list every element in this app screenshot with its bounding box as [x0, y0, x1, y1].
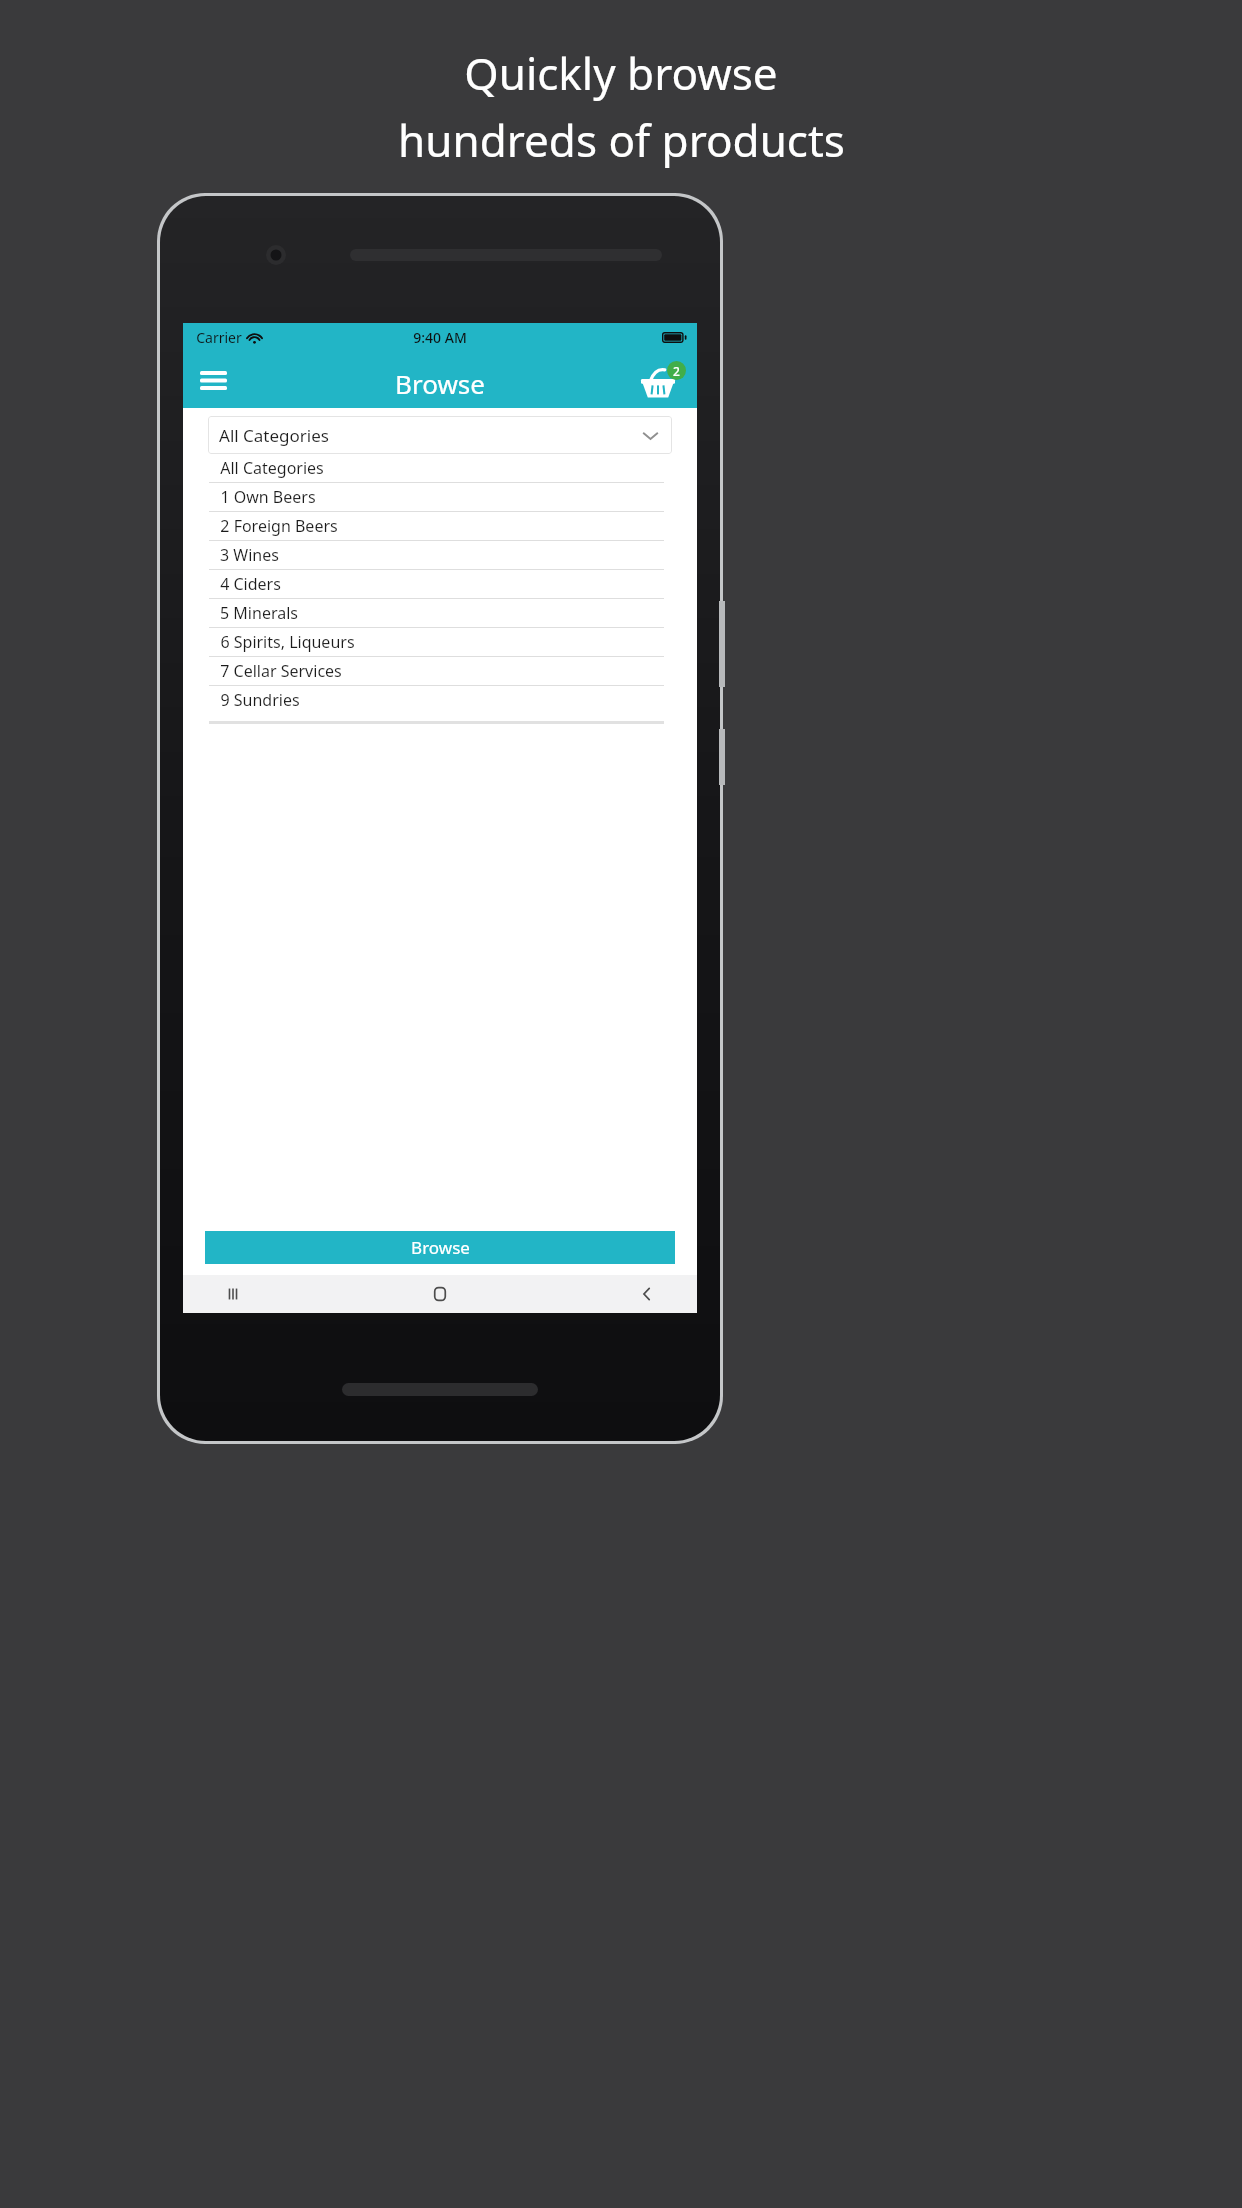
staticText: All Categories: [220, 457, 324, 479]
staticText: 2 Foreign Beers: [220, 515, 338, 537]
staticText: 5 Minerals: [220, 602, 298, 624]
button[interactable]: Open navigation menu: [189, 356, 237, 404]
button[interactable]: Home: [418, 1275, 462, 1313]
staticText: 9 Sundries: [220, 689, 300, 711]
button[interactable]: 2 Foreign Beers: [209, 512, 664, 540]
staticText: hundreds of products: [398, 110, 845, 170]
staticText: Browse: [395, 366, 485, 401]
staticText: 1 Own Beers: [220, 486, 316, 508]
button[interactable]: Back: [625, 1275, 669, 1313]
staticText: 6 Spirits, Liqueurs: [220, 631, 355, 653]
button[interactable]: 6 Spirits, Liqueurs: [209, 628, 664, 656]
button[interactable]: Browse: [205, 1231, 675, 1264]
button[interactable]: All Categories: [209, 454, 664, 482]
staticText: 2: [673, 363, 680, 379]
button[interactable]: Shopping basket, 2 items: [637, 354, 689, 406]
staticText: 4 Ciders: [220, 573, 281, 595]
staticText: 9:40 AM: [413, 328, 467, 347]
button[interactable]: 9 Sundries: [209, 686, 664, 714]
staticText: Carrier: [196, 328, 242, 347]
button[interactable]: 3 Wines: [209, 541, 664, 569]
button[interactable]: Recent apps: [211, 1275, 255, 1313]
button[interactable]: 1 Own Beers: [209, 483, 664, 511]
staticText: Quickly browse: [464, 43, 778, 103]
staticText: Browse: [411, 1236, 470, 1259]
button[interactable]: 7 Cellar Services: [209, 657, 664, 685]
staticText: 3 Wines: [220, 544, 279, 566]
button[interactable]: 4 Ciders: [209, 570, 664, 598]
staticText: 7 Cellar Services: [220, 660, 342, 682]
staticText: All Categories: [219, 424, 329, 447]
button[interactable]: All Categories: [208, 416, 672, 454]
button[interactable]: 5 Minerals: [209, 599, 664, 627]
